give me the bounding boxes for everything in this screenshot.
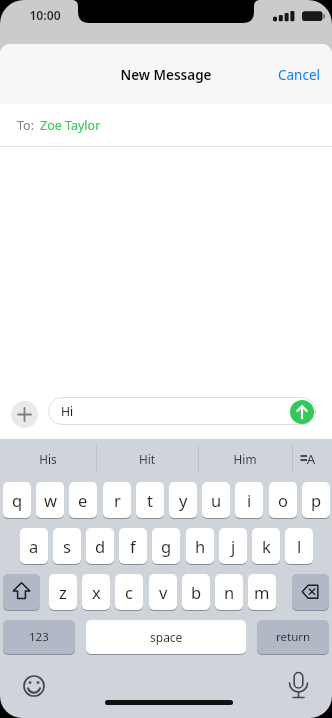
button[interactable]: g (152, 528, 180, 564)
button[interactable]: d (86, 528, 114, 564)
staticText: return (276, 629, 311, 645)
button[interactable] (0, 104, 332, 147)
staticText: h (195, 535, 206, 557)
button[interactable]: k (252, 528, 280, 564)
staticText: 10:00 (24, 7, 66, 24)
button[interactable]: q (3, 482, 31, 518)
button[interactable]: l (285, 528, 313, 564)
button[interactable]: e (69, 482, 97, 518)
staticText: d (95, 535, 106, 557)
staticText: Cancel (262, 66, 320, 84)
button[interactable]: c (115, 574, 143, 610)
button[interactable]: t (136, 482, 164, 518)
button[interactable] (11, 401, 38, 428)
button[interactable]: f (119, 528, 147, 564)
staticText: k (262, 535, 271, 557)
button[interactable]: His (8, 449, 88, 468)
button[interactable]: 123 (3, 620, 75, 654)
staticText: w (44, 489, 57, 511)
staticText: To: (17, 117, 39, 134)
button[interactable]: Him (205, 449, 285, 468)
button[interactable]: z (49, 574, 77, 610)
staticText: v (159, 581, 168, 603)
button[interactable]: n (215, 574, 243, 610)
staticText: y (179, 489, 188, 511)
button[interactable]: A (294, 446, 326, 471)
button[interactable]: j (219, 528, 247, 564)
staticText: m (254, 581, 270, 603)
button[interactable]: Hit (107, 449, 187, 468)
staticText: b (191, 581, 202, 603)
button[interactable]: p (302, 482, 330, 518)
staticText: Zoe Taylor (40, 117, 120, 134)
staticText: i (247, 489, 252, 511)
button[interactable] (286, 670, 312, 700)
button[interactable] (292, 574, 329, 610)
staticText: New Message (96, 66, 236, 84)
staticText: s (63, 535, 71, 557)
button[interactable] (290, 400, 314, 424)
button[interactable]: x (82, 574, 110, 610)
staticText: His (8, 451, 88, 467)
staticText: f (130, 535, 136, 557)
staticText: j (231, 535, 236, 557)
button[interactable] (48, 397, 316, 425)
staticText: q (12, 489, 23, 511)
button[interactable]: y (169, 482, 197, 518)
staticText: r (114, 489, 121, 511)
button[interactable]: space (86, 620, 246, 654)
staticText: u (211, 489, 222, 511)
staticText: 123 (29, 629, 49, 645)
staticText: o (278, 489, 288, 511)
button[interactable]: return (257, 620, 329, 654)
staticText: g (161, 535, 172, 557)
button[interactable]: b (182, 574, 210, 610)
staticText: t (147, 489, 153, 511)
button[interactable]: w (36, 482, 64, 518)
button[interactable]: o (269, 482, 297, 518)
staticText: l (297, 535, 302, 557)
button[interactable]: u (202, 482, 230, 518)
button[interactable]: r (103, 482, 131, 518)
staticText: a (29, 535, 39, 557)
staticText: A (301, 450, 321, 468)
staticText: p (311, 489, 322, 511)
staticText: n (224, 581, 235, 603)
staticText: Hi (61, 403, 91, 419)
button[interactable] (21, 673, 47, 699)
button[interactable]: m (248, 574, 276, 610)
button[interactable]: v (149, 574, 177, 610)
button[interactable]: h (186, 528, 214, 564)
button[interactable]: a (20, 528, 48, 564)
staticText: c (125, 581, 133, 603)
button[interactable]: s (53, 528, 81, 564)
button[interactable] (3, 574, 40, 610)
staticText: space (150, 629, 183, 645)
button[interactable]: i (235, 482, 263, 518)
staticText: e (78, 489, 88, 511)
staticText: Hit (107, 451, 187, 467)
staticText: Him (205, 451, 285, 467)
staticText: x (92, 581, 101, 603)
staticText: z (59, 581, 67, 603)
button[interactable]: Cancel (262, 66, 320, 84)
